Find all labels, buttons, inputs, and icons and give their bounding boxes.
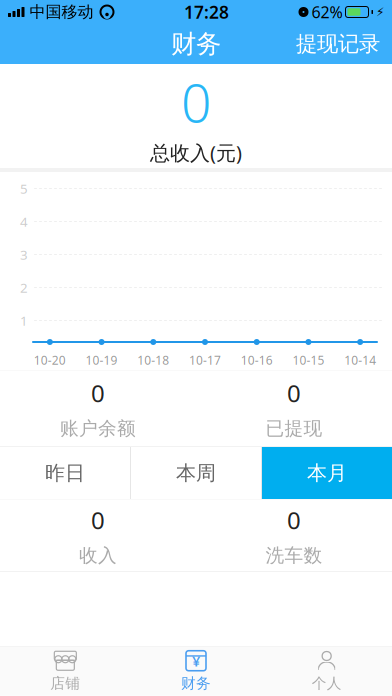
staticText: 本月 <box>307 461 347 485</box>
staticText: 本周 <box>176 461 216 485</box>
staticText: 店铺 <box>50 674 80 692</box>
staticText: 4 <box>20 213 28 230</box>
button[interactable]: 本月 <box>262 447 392 499</box>
staticText: 总收入(元) <box>150 139 242 166</box>
staticText: 62% <box>311 1 342 23</box>
staticText: 3 <box>20 246 28 263</box>
staticText: 0 <box>91 377 105 409</box>
staticText: 10-18 <box>137 352 169 368</box>
staticText: 10-16 <box>241 352 273 368</box>
staticText: 10-17 <box>189 352 221 368</box>
staticText: ⚡︎ <box>376 5 384 19</box>
staticText: 洗车数 <box>265 544 322 567</box>
staticText: 0 <box>181 66 211 137</box>
staticText: 0 <box>287 377 301 409</box>
staticText: 昨日 <box>45 461 85 485</box>
staticText: 10-15 <box>292 352 324 368</box>
staticText: 中国移动 <box>29 2 93 22</box>
staticText: 0 <box>287 504 301 536</box>
staticText: 0 <box>91 504 105 536</box>
staticText: 财务 <box>181 674 211 692</box>
staticText: 2 <box>20 279 28 296</box>
staticText: 财务 <box>171 28 221 59</box>
button[interactable]: 昨日 <box>0 447 130 499</box>
staticText: 提现记录 <box>296 31 380 57</box>
button[interactable]: 提现记录 <box>284 23 392 65</box>
staticText: 5 <box>20 180 28 197</box>
staticText: 10-20 <box>34 352 66 368</box>
button[interactable]: 店铺 <box>0 647 131 696</box>
staticText: 已提现 <box>265 417 322 440</box>
staticText: 账户余额 <box>60 417 136 440</box>
staticText: 10-14 <box>344 352 376 368</box>
staticText: 收入 <box>79 544 117 567</box>
staticText: 17:28 <box>184 0 229 23</box>
staticText: 1 <box>20 312 28 329</box>
staticText: 个人 <box>312 674 342 692</box>
button[interactable]: 本周 <box>131 447 261 499</box>
button[interactable]: 个人 <box>261 647 392 696</box>
button[interactable]: ¥ <box>131 647 261 696</box>
staticText: ¥ <box>192 651 200 670</box>
staticText: 10-19 <box>86 352 118 368</box>
